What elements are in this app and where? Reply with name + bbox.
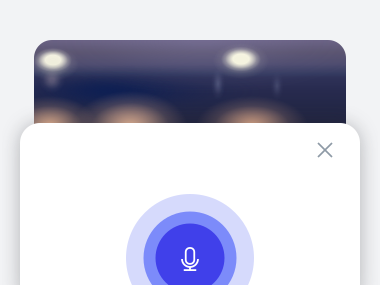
button[interactable]: Close	[309, 134, 341, 166]
button[interactable]: Record	[126, 194, 254, 285]
